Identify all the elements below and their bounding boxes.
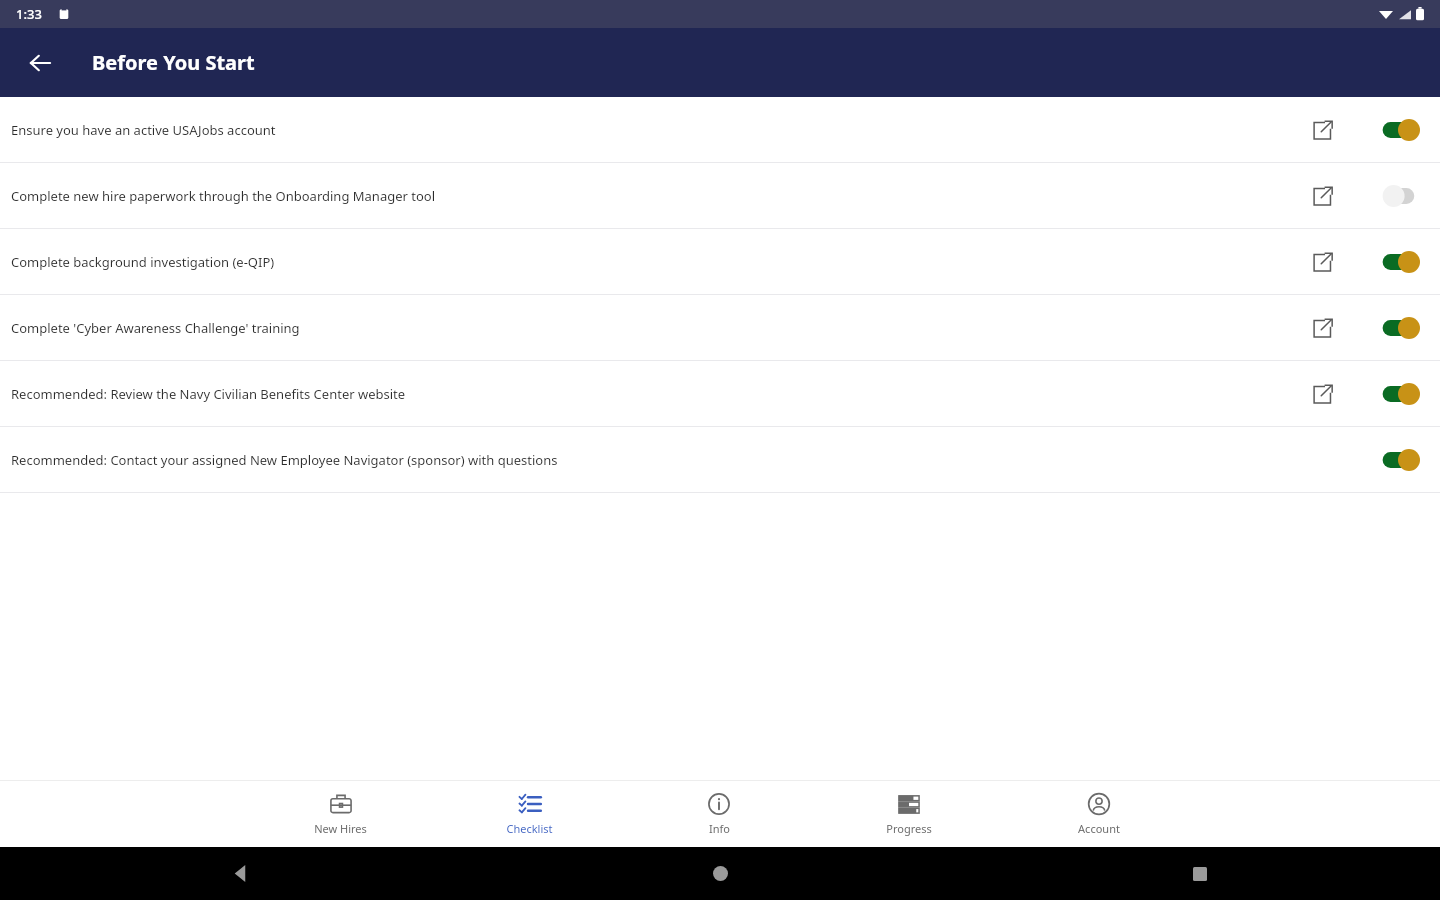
staticText: 1:33 [16,5,42,23]
button[interactable]: Account [1004,781,1194,847]
button[interactable]: Progress [814,781,1004,847]
button[interactable]: Complete 'Cyber Awareness Challenge' tra… [0,295,1440,360]
button[interactable]: Complete new hire paperwork through the … [0,163,1440,228]
button[interactable]: Recommended: Review the Navy Civilian Be… [0,361,1440,426]
staticText: Ensure you have an active USAJobs accoun… [11,121,1270,139]
staticText: Complete new hire paperwork through the … [11,187,1270,205]
button[interactable]: Open link [1300,306,1344,350]
button[interactable]: Open link [1300,174,1344,218]
button[interactable]: Mark incomplete [1379,377,1423,411]
button[interactable]: Info [624,781,814,847]
button[interactable]: Open link [1300,108,1344,152]
button[interactable]: Back [0,847,480,900]
button[interactable]: Open link [1300,240,1344,284]
button[interactable]: Complete background investigation (e-QIP… [0,229,1440,294]
staticText: Recommended: Review the Navy Civilian Be… [11,385,1270,403]
staticText: Account [1078,821,1120,836]
staticText: Info [709,821,730,836]
button[interactable]: Back [16,39,64,87]
staticText: Before You Start [92,49,255,76]
button[interactable]: Mark complete [1379,179,1423,213]
button[interactable]: Home [480,847,960,900]
staticText: Recommended: Contact your assigned New E… [11,451,1270,469]
staticText: Checklist [506,821,553,836]
button[interactable]: Recents [960,847,1440,900]
button[interactable]: Mark incomplete [1379,311,1423,345]
button[interactable]: Ensure you have an active USAJobs accoun… [0,97,1440,162]
button[interactable]: Recommended: Contact your assigned New E… [0,427,1440,492]
button[interactable]: Mark incomplete [1379,443,1423,477]
staticText: Complete 'Cyber Awareness Challenge' tra… [11,319,1270,337]
button[interactable]: Checklist [435,781,624,847]
button[interactable]: Mark incomplete [1379,113,1423,147]
staticText: Progress [886,821,932,836]
staticText: Complete background investigation (e-QIP… [11,253,1270,271]
button[interactable]: Open link [1300,372,1344,416]
button[interactable]: Mark incomplete [1379,245,1423,279]
button[interactable]: New Hires [246,781,435,847]
staticText: New Hires [314,821,367,836]
